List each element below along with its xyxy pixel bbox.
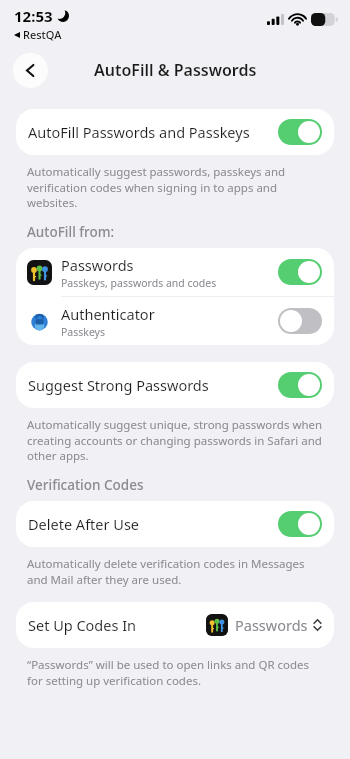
staticText: Automatically suggest passwords, passkey…: [27, 164, 326, 210]
button[interactable]: Back: [13, 53, 48, 88]
staticText: Passwords: [235, 615, 308, 635]
button[interactable]: Delete After Use: [16, 501, 334, 547]
button[interactable]: Off: [278, 308, 322, 334]
staticText: 12:53: [14, 6, 53, 26]
staticText: AutoFill from:: [27, 223, 115, 241]
button[interactable]: AutoFill Passwords and Passkeys: [16, 109, 334, 155]
staticText: AutoFill & Passwords: [94, 59, 257, 81]
staticText: Passwords: [61, 255, 134, 275]
staticText: Automatically suggest unique, strong pas…: [27, 417, 326, 463]
staticText: Passkeys: [61, 325, 106, 339]
staticText: Delete After Use: [28, 514, 278, 534]
button[interactable]: Authenticator: [16, 297, 334, 345]
button[interactable]: Suggest Strong Passwords: [16, 362, 334, 408]
staticText: Set Up Codes In: [28, 615, 206, 635]
button[interactable]: On: [278, 372, 322, 398]
button[interactable]: On: [278, 119, 322, 145]
staticText: Passkeys, passwords and codes: [61, 276, 217, 290]
button[interactable]: Passwords: [16, 248, 334, 296]
button[interactable]: On: [278, 511, 322, 537]
staticText: Authenticator: [61, 304, 155, 324]
button[interactable]: Set Up Codes In: [16, 602, 334, 648]
button[interactable]: On: [278, 259, 322, 285]
staticText: Automatically delete verification codes …: [27, 556, 326, 587]
staticText: “Passwords” will be used to open links a…: [27, 657, 326, 688]
staticText: RestQA: [23, 27, 62, 42]
staticText: AutoFill Passwords and Passkeys: [28, 122, 278, 142]
staticText: Verification Codes: [27, 476, 144, 494]
staticText: Suggest Strong Passwords: [28, 375, 278, 395]
